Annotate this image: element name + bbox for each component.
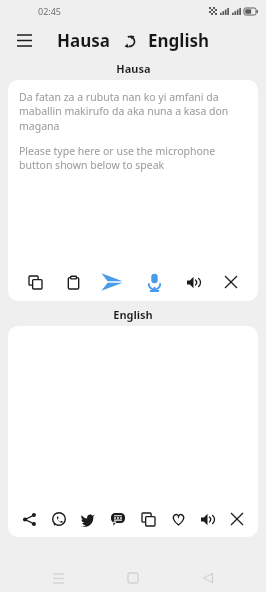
staticText: English [148,29,210,52]
button[interactable]: Translate [95,265,129,299]
button[interactable]: Favourite [165,506,191,532]
button[interactable]: Copy [20,267,50,297]
staticText: Please type here or use the microphone b… [19,144,247,172]
button[interactable]: Speak [178,267,208,297]
button[interactable]: Share [16,506,42,532]
staticText: English [113,307,153,322]
button[interactable]: Recents [41,564,75,592]
button[interactable]: Menu [10,26,38,54]
staticText: Hausa [57,29,110,52]
button[interactable]: Speak [194,506,220,532]
button[interactable]: Clear [216,267,246,297]
staticText: Da fatan za a rubuta nan ko yi amfani da… [19,90,247,133]
button[interactable]: Home [116,564,150,592]
button[interactable]: Swap languages [119,31,139,51]
button[interactable]: Copy [135,506,161,532]
staticText: Hausa [116,61,151,76]
button[interactable]: Paste [58,267,88,297]
button[interactable]: Hausa [57,29,110,52]
staticText: 02:45 [38,5,62,17]
button[interactable]: Twitter [75,506,101,532]
button[interactable]: WhatsApp [46,506,72,532]
button[interactable]: Clear [224,506,250,532]
button[interactable]: English [148,29,210,52]
button[interactable]: Back [191,564,225,592]
button[interactable]: SMS [105,506,131,532]
button[interactable]: Microphone [137,265,171,299]
